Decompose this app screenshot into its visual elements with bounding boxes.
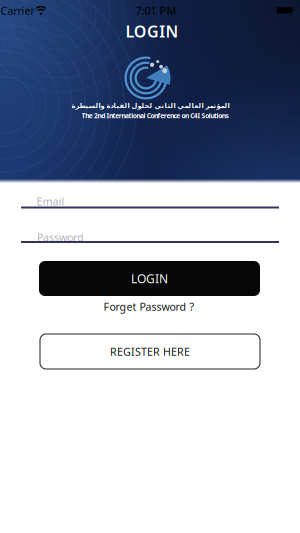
staticText: LOGIN [131,270,168,286]
button[interactable]: Forget Password ? [74,299,224,313]
staticText: The 2nd International Conference on C4I … [82,111,228,120]
staticText: Carrier [0,3,34,18]
button[interactable]: Password [21,218,279,244]
button[interactable]: Email [21,183,279,209]
staticText: Password [37,230,84,244]
staticText: 7:01 PM [135,3,176,18]
staticText: LOGIN [125,21,179,42]
staticText: Forget Password ? [103,299,194,314]
staticText: REGISTER HERE [110,344,190,359]
button[interactable]: LOGIN [39,261,260,296]
staticText: المؤتمر العالمي الثاني لحلول القيادة وال… [71,102,229,109]
staticText: Email [36,194,64,209]
button[interactable]: REGISTER HERE [40,334,260,369]
